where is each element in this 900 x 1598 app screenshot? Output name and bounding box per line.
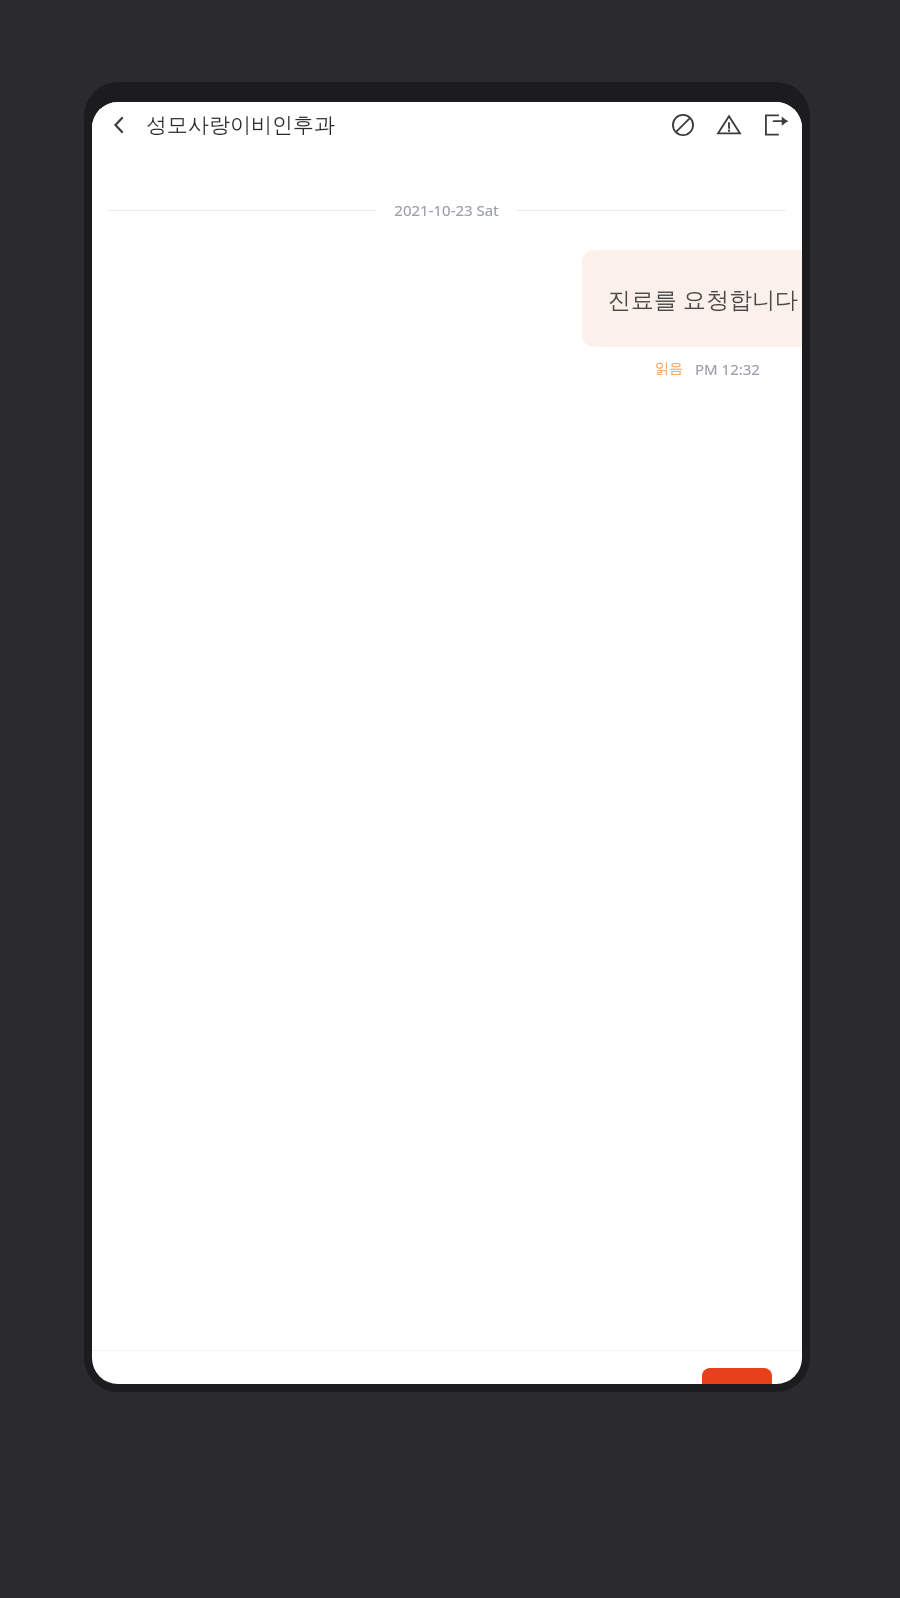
- button[interactable]: Block: [660, 102, 706, 148]
- button[interactable]: Send: [702, 1368, 772, 1384]
- staticText: 읽음: [655, 360, 683, 378]
- button[interactable]: Report: [706, 102, 752, 148]
- button[interactable]: 진료를 요청합니다: [582, 250, 802, 347]
- button[interactable]: Leave chat: [752, 102, 800, 148]
- staticText: 2021-10-23 Sat: [394, 200, 499, 220]
- button[interactable]: Back: [92, 102, 146, 148]
- staticText: 진료를 요청합니다: [608, 283, 798, 314]
- staticText: 성모사랑이비인후과: [146, 112, 335, 138]
- staticText: PM 12:32: [695, 359, 760, 379]
